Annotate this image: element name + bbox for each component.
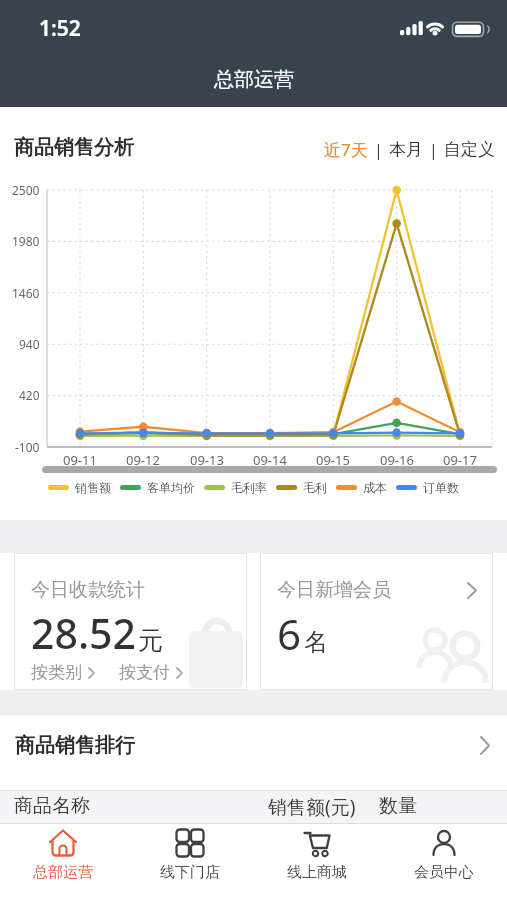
staticText: 会员中心 — [414, 863, 474, 882]
button[interactable]: 商品销售排行 — [15, 715, 490, 790]
staticText: 09-17 — [443, 451, 477, 469]
staticText: 今日新增会员 — [277, 578, 391, 602]
staticText: 自定义 — [444, 139, 495, 160]
staticText: | — [429, 139, 438, 161]
button[interactable]: 总部运营 — [0, 824, 126, 900]
staticText: 线上商城 — [287, 863, 347, 882]
staticText: 数量 — [379, 794, 417, 818]
staticText: 客单均价 — [147, 480, 195, 495]
staticText: 940 — [19, 336, 40, 352]
button[interactable]: 近7天 — [324, 138, 495, 161]
staticText: 09-15 — [316, 451, 350, 469]
button[interactable]: 线下门店 — [126, 824, 253, 900]
staticText: 元 — [138, 625, 163, 656]
staticText: | — [374, 139, 383, 161]
staticText: 商品销售分析 — [14, 135, 134, 160]
staticText: 商品名称 — [14, 794, 90, 818]
staticText: 420 — [19, 387, 40, 403]
staticText: 按类别 — [31, 662, 82, 683]
staticText: 09-13 — [190, 451, 224, 469]
staticText: 6 — [277, 605, 302, 662]
staticText: 1:52 — [39, 14, 81, 43]
staticText: 名 — [304, 627, 328, 657]
button[interactable]: 线上商城 — [253, 824, 380, 900]
staticText: 28.52 — [31, 605, 136, 661]
staticText: 订单数 — [423, 480, 459, 495]
staticText: 09-12 — [126, 451, 160, 469]
staticText: 销售额 — [75, 480, 111, 495]
button[interactable]: 今日新增会员 — [260, 553, 493, 690]
staticText: 按支付 — [119, 662, 170, 683]
button[interactable]: 会员中心 — [380, 824, 507, 900]
staticText: 09-14 — [253, 451, 287, 469]
staticText: 1980 — [12, 233, 40, 249]
staticText: 2500 — [12, 182, 40, 198]
staticText: 线下门店 — [160, 863, 220, 882]
staticText: 商品销售排行 — [15, 733, 135, 758]
staticText: 毛利 — [303, 480, 327, 495]
staticText: 09-11 — [63, 451, 97, 469]
staticText: 近7天 — [324, 138, 368, 161]
staticText: 总部运营 — [33, 863, 93, 882]
staticText: 销售额(元) — [268, 794, 356, 820]
staticText: 成本 — [363, 480, 387, 495]
staticText: -100 — [15, 439, 40, 455]
staticText: 1460 — [12, 285, 40, 301]
staticText: 本月 — [389, 139, 423, 160]
staticText: 毛利率 — [231, 480, 267, 495]
staticText: 总部运营 — [214, 67, 294, 92]
button[interactable]: 今日收款统计 — [14, 553, 247, 690]
staticText: 今日收款统计 — [31, 578, 145, 602]
staticText: 09-16 — [380, 451, 414, 469]
